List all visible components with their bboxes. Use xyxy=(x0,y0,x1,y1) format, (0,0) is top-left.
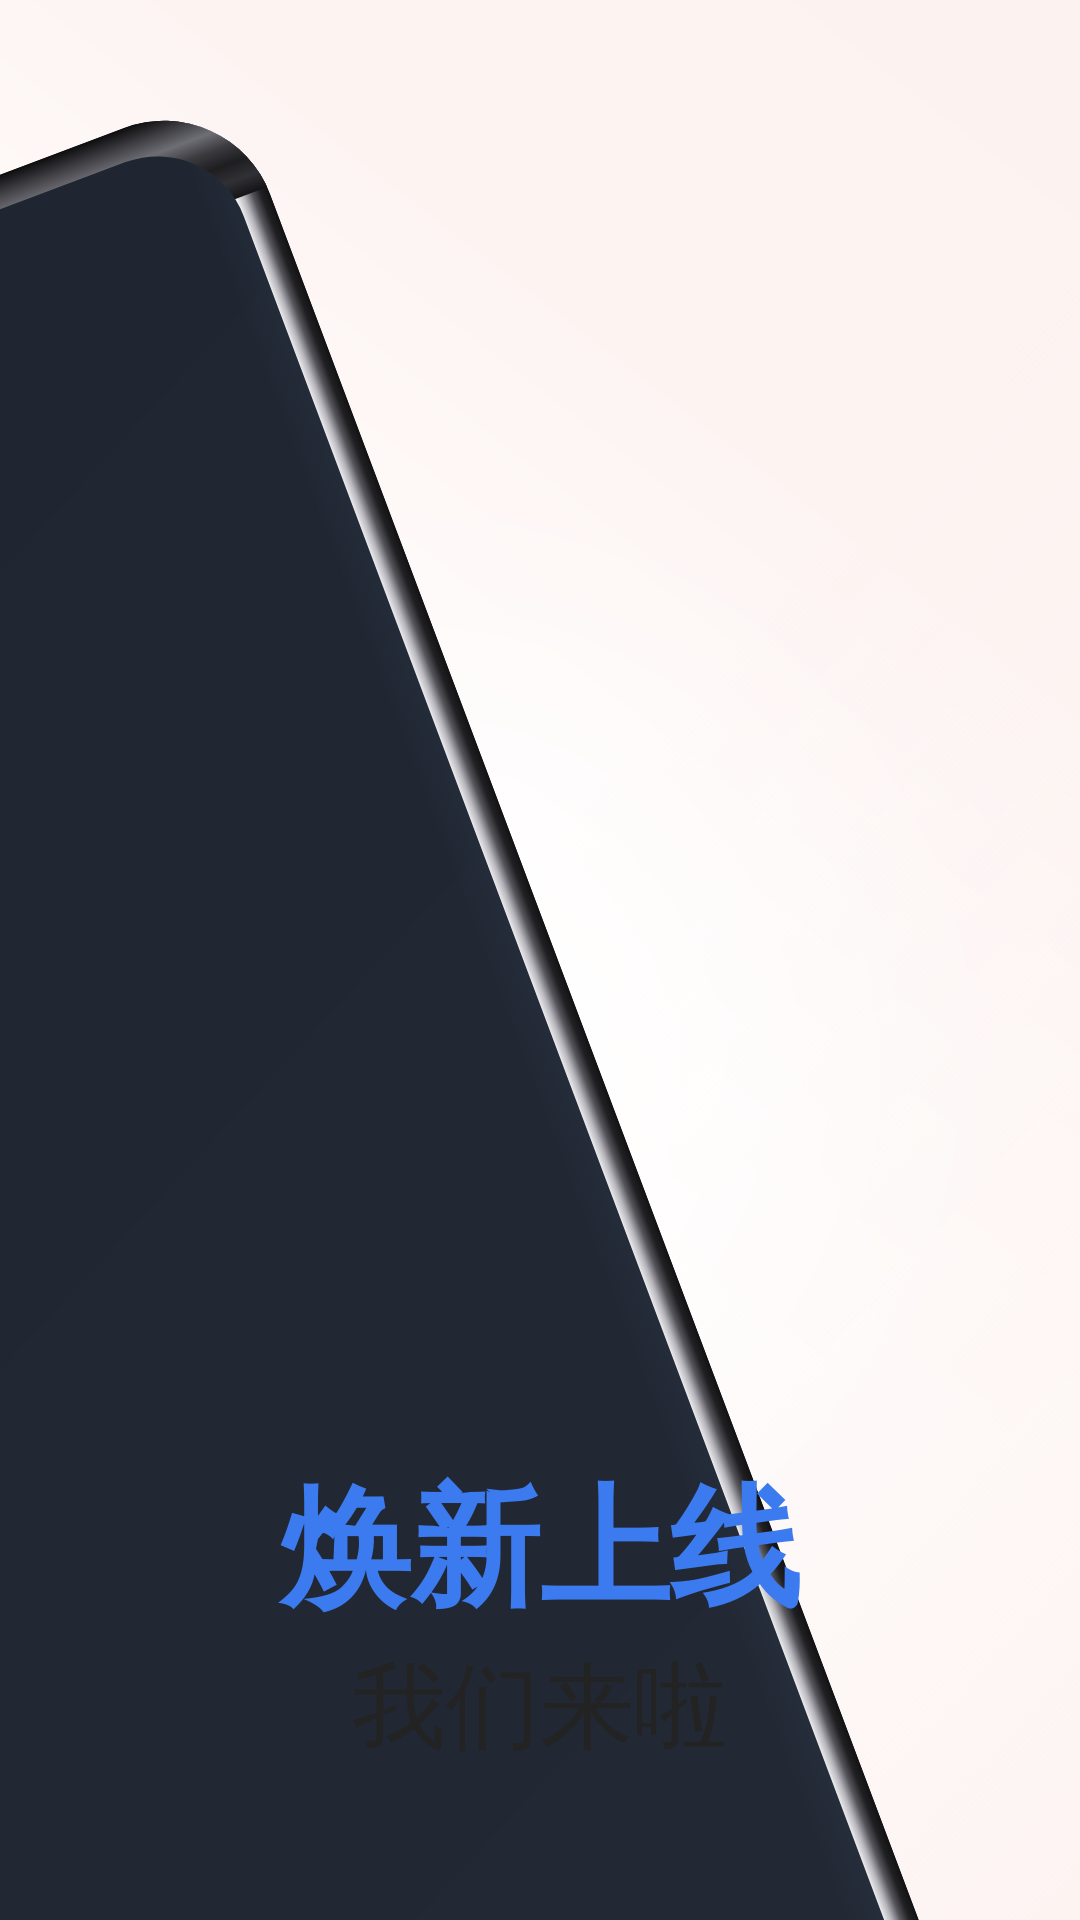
button[interactable]: 我们来啦 xyxy=(0,1648,1080,1766)
button[interactable]: 焕新上线 xyxy=(0,1468,1080,1632)
other: Phone product image xyxy=(0,0,1080,1920)
